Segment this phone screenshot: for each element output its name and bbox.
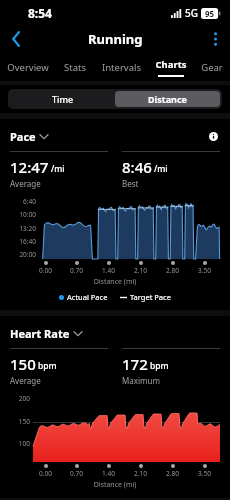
staticText: Distance (mi) — [10, 277, 220, 287]
staticText: Pace — [10, 129, 36, 144]
button[interactable]: Gear — [193, 53, 230, 81]
staticText: Maximum — [122, 375, 160, 386]
staticText: 200 — [10, 394, 30, 403]
staticText: 10:00 — [10, 210, 36, 219]
staticText: 172 — [122, 354, 148, 374]
button[interactable]: Heart Rate — [10, 326, 82, 341]
button[interactable]: Back — [0, 25, 32, 53]
staticText: 3.50 — [198, 469, 211, 478]
staticText: 100 — [10, 439, 30, 448]
staticText: 8:54 — [28, 5, 52, 21]
staticText: Target Pace — [130, 292, 171, 302]
button[interactable]: Info — [206, 129, 220, 143]
staticText: Heart Rate — [10, 326, 70, 341]
staticText: 2.80 — [166, 266, 179, 275]
button[interactable]: Pace — [10, 129, 48, 144]
staticText: 1.40 — [102, 266, 115, 275]
staticText: 2.80 — [166, 469, 179, 478]
button[interactable]: Distance — [115, 91, 220, 107]
staticText: Distance — [148, 93, 187, 105]
staticText: 5G — [185, 6, 198, 20]
staticText: Charts — [155, 58, 187, 71]
staticText: Gear — [201, 61, 223, 74]
staticText: /mi — [51, 163, 65, 175]
button[interactable]: Stats — [55, 53, 95, 81]
staticText: 6:40 — [10, 197, 36, 206]
staticText: 0.70 — [70, 469, 83, 478]
staticText: 3.50 — [198, 266, 211, 275]
staticText: 13:20 — [10, 224, 36, 233]
staticText: Stats — [64, 61, 86, 74]
staticText: Intervals — [102, 61, 141, 74]
staticText: 0.00 — [39, 266, 52, 275]
staticText: 150 — [10, 354, 36, 374]
staticText: Distance (mi) — [10, 480, 220, 490]
staticText: 0.70 — [70, 266, 83, 275]
button[interactable]: Time — [10, 91, 115, 107]
staticText: 2.10 — [134, 469, 147, 478]
staticText: Best — [122, 178, 139, 189]
staticText: 1.40 — [102, 469, 115, 478]
staticText: /mi — [154, 163, 168, 175]
staticText: Average — [10, 178, 41, 189]
staticText: 2.10 — [134, 266, 147, 275]
staticText: 8:46 — [122, 157, 152, 177]
staticText: Running — [88, 30, 143, 48]
staticText: 95 — [205, 8, 215, 19]
staticText: bpm — [38, 360, 57, 372]
button[interactable]: Overview — [0, 53, 55, 81]
button[interactable]: Intervals — [95, 53, 148, 81]
staticText: Actual Pace — [67, 292, 108, 302]
staticText: Time — [52, 93, 74, 105]
staticText: 20:00 — [10, 250, 36, 259]
staticText: Average — [10, 375, 41, 386]
button[interactable]: More options — [200, 25, 230, 53]
staticText: 16:40 — [10, 237, 36, 246]
staticText: bpm — [150, 360, 169, 372]
button[interactable]: Charts — [148, 53, 193, 81]
staticText: 12:47 — [10, 157, 49, 177]
staticText: 0.00 — [39, 469, 52, 478]
staticText: 150 — [10, 417, 30, 426]
staticText: Overview — [7, 61, 49, 74]
